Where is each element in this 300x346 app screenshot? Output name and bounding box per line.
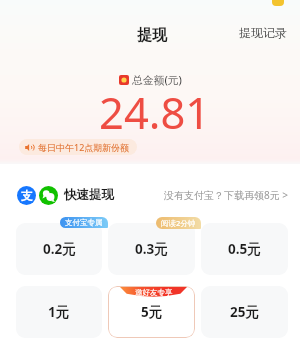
staticText: 0.2元 <box>43 240 76 258</box>
button[interactable]: 没有支付宝？下载再领8元 > <box>164 184 289 206</box>
button[interactable]: 0.2元 <box>16 223 102 275</box>
staticText: 24.81 <box>99 82 211 141</box>
staticText: 快速提现 <box>64 187 114 203</box>
button[interactable]: 0.3元 <box>108 223 195 275</box>
staticText: 提现 <box>137 26 167 45</box>
staticText: 0.3元 <box>135 240 168 258</box>
staticText: 总金额(元) <box>132 72 182 87</box>
staticText: 0.5元 <box>228 240 261 258</box>
staticText: 提现记录 <box>239 25 287 40</box>
staticText: 没有支付宝？下载再领8元 > <box>164 188 289 202</box>
button[interactable]: 提现记录 <box>226 19 300 46</box>
staticText: 支付宝专属 <box>65 218 103 227</box>
staticText: 1元 <box>48 303 70 321</box>
button[interactable]: 1元 <box>16 286 102 338</box>
button[interactable]: 每日中午12点期新份额 <box>19 139 137 155</box>
staticText: 5元 <box>141 303 163 321</box>
staticText: 支 <box>21 189 33 203</box>
button[interactable]: 0.5元 <box>201 223 288 275</box>
staticText: 邀好友专享 <box>135 288 173 297</box>
button[interactable]: 25元 <box>201 286 288 338</box>
staticText: 每日中午12点期新份额 <box>38 141 130 153</box>
staticText: 阅读2分钟 <box>161 218 196 228</box>
staticText: 25元 <box>230 303 259 321</box>
button[interactable]: 5元 <box>108 286 195 338</box>
